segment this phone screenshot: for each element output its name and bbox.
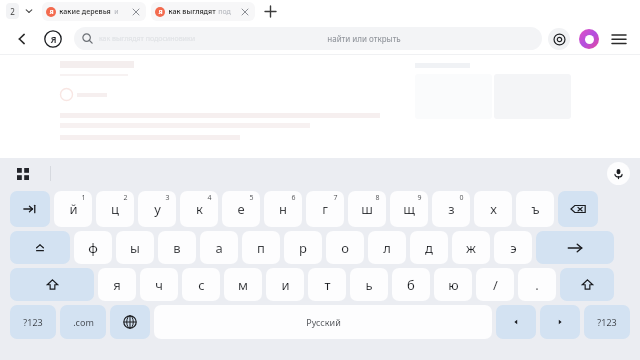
staticText: и [281, 276, 290, 294]
staticText: найти или открыть [327, 33, 401, 44]
button[interactable]: Enter [536, 231, 614, 264]
staticText: щ [403, 200, 415, 218]
staticText: 9 [417, 193, 422, 203]
staticText: ь [365, 276, 373, 294]
button[interactable]: л [368, 231, 406, 264]
staticText: и [113, 7, 120, 17]
button[interactable]: з [432, 191, 470, 227]
button[interactable]: ш [348, 191, 386, 227]
button[interactable]: Yandex [42, 28, 64, 50]
staticText: Русский [306, 316, 341, 328]
staticText: 2 [123, 193, 128, 203]
button[interactable]: к [180, 191, 218, 227]
button[interactable]: Shift [560, 268, 614, 301]
button[interactable]: 2 [6, 3, 19, 19]
button[interactable]: н [264, 191, 302, 227]
staticText: н [279, 200, 287, 218]
button[interactable]: г [306, 191, 344, 227]
staticText: / [493, 276, 498, 294]
staticText: у [154, 200, 161, 218]
button[interactable]: т [308, 268, 346, 301]
button[interactable]: Alice [579, 29, 599, 49]
staticText: ю [448, 276, 459, 294]
button[interactable]: ъ [516, 191, 554, 227]
staticText: х [490, 200, 497, 218]
button[interactable]: б [392, 268, 430, 301]
button[interactable]: е [222, 191, 260, 227]
staticText: Я [158, 8, 163, 16]
button[interactable]: Shift [10, 268, 94, 301]
button[interactable]: New tab [261, 2, 279, 20]
staticText: как выглядят [168, 7, 216, 17]
button[interactable]: ч [140, 268, 178, 301]
staticText: е [237, 200, 245, 218]
button[interactable]: р [284, 231, 322, 264]
button[interactable]: а [200, 231, 238, 264]
button[interactable]: с [182, 268, 220, 301]
button[interactable]: х [474, 191, 512, 227]
button[interactable]: Close tab [239, 6, 251, 18]
button[interactable]: Я [42, 2, 146, 21]
staticText: ч [155, 276, 163, 294]
button[interactable]: э [494, 231, 532, 264]
staticText: какие деревья [59, 7, 111, 17]
button[interactable]: Symbols [10, 305, 56, 339]
button[interactable]: Change language [110, 305, 150, 339]
button[interactable]: ж [452, 231, 490, 264]
button[interactable]: Я [151, 2, 255, 21]
button[interactable]: й [54, 191, 92, 227]
button[interactable]: ы [116, 231, 154, 264]
staticText: ъ [531, 200, 540, 218]
button[interactable]: п [242, 231, 280, 264]
staticText: л [383, 239, 391, 257]
button[interactable]: м [224, 268, 262, 301]
button[interactable]: Backspace [558, 191, 598, 227]
staticText: 7 [333, 193, 338, 203]
button[interactable]: и [266, 268, 304, 301]
button[interactable]: ю [434, 268, 472, 301]
staticText: ж [466, 239, 476, 257]
button[interactable]: ц [96, 191, 134, 227]
staticText: с [198, 276, 205, 294]
staticText: ы [130, 239, 140, 257]
staticText: к [196, 200, 203, 218]
button[interactable]: Close tab [130, 6, 142, 18]
button[interactable]: Search by image [548, 28, 570, 50]
button[interactable]: Cursor left [496, 305, 536, 339]
button[interactable]: Voice input [607, 162, 630, 185]
button[interactable]: Symbols [584, 305, 630, 339]
staticText: т [324, 276, 331, 294]
staticText: д [425, 239, 433, 257]
staticText: под [218, 7, 231, 17]
button[interactable]: . [518, 268, 556, 301]
staticText: р [299, 239, 307, 257]
button[interactable]: ь [350, 268, 388, 301]
button[interactable]: как выглядят подосиновики [74, 27, 542, 50]
button[interactable]: / [476, 268, 514, 301]
staticText: .com [73, 316, 94, 328]
button[interactable]: Caps lock [10, 231, 70, 264]
button[interactable]: д [410, 231, 448, 264]
button[interactable]: Cursor right [540, 305, 580, 339]
button[interactable]: я [98, 268, 136, 301]
button[interactable]: Keyboard modes [10, 161, 36, 187]
button[interactable]: Русский [154, 305, 492, 339]
button[interactable]: ф [74, 231, 112, 264]
button[interactable]: Tab [10, 191, 50, 227]
staticText: м [238, 276, 248, 294]
staticText: я [113, 276, 121, 294]
button[interactable]: Expand tabs [22, 4, 36, 18]
staticText: ф [88, 239, 98, 257]
button[interactable]: в [158, 231, 196, 264]
button[interactable]: Menu [608, 28, 630, 50]
button[interactable]: Back [10, 27, 34, 51]
staticText: как выглядят подосиновики [99, 34, 195, 44]
button[interactable]: у [138, 191, 176, 227]
staticText: й [69, 200, 78, 218]
button[interactable]: Dot com [60, 305, 106, 339]
button[interactable]: о [326, 231, 364, 264]
button[interactable]: щ [390, 191, 428, 227]
staticText: 3 [165, 193, 170, 203]
staticText: ш [361, 200, 373, 218]
staticText: Я [50, 33, 57, 45]
